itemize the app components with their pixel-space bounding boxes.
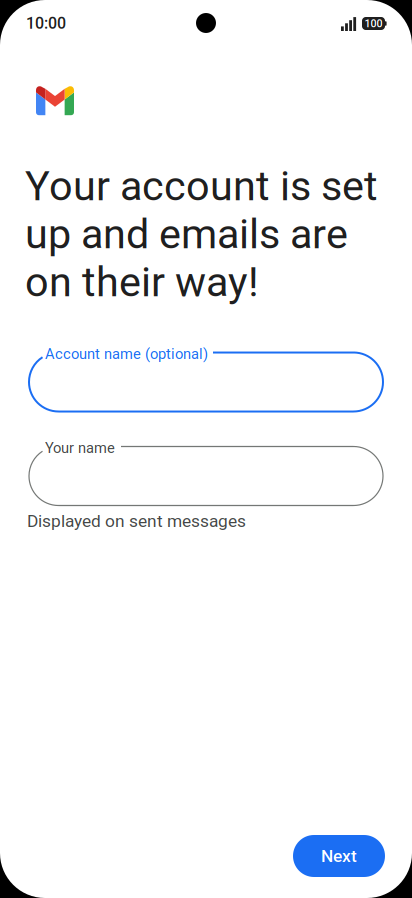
button[interactable]: Next bbox=[293, 835, 385, 877]
staticText: Your account is set bbox=[25, 162, 378, 210]
staticText: 10:00 bbox=[26, 14, 66, 33]
staticText: on their way! bbox=[25, 258, 259, 306]
button[interactable]: Account name (optional) bbox=[29, 352, 383, 411]
staticText: 100 bbox=[364, 17, 382, 30]
staticText: Displayed on sent messages bbox=[27, 511, 246, 531]
staticText: up and emails are bbox=[25, 210, 348, 258]
staticText: Next bbox=[321, 846, 357, 866]
button[interactable]: Your name bbox=[29, 446, 383, 505]
staticText: Your name bbox=[45, 439, 115, 457]
staticText: Account name (optional) bbox=[45, 345, 208, 363]
